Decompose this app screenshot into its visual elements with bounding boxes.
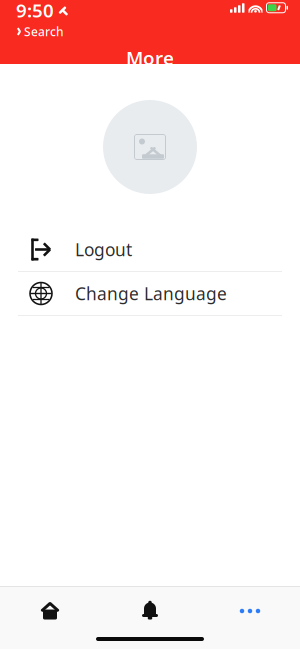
button[interactable]: Logout (0, 228, 300, 271)
button[interactable]: Notifications (100, 594, 200, 628)
staticText: Logout (75, 238, 132, 261)
staticText: Change Language (75, 282, 227, 305)
staticText: Search (24, 23, 64, 39)
button[interactable]: More (200, 594, 300, 628)
button[interactable]: Change Language (0, 272, 300, 315)
staticText: 9:50 (16, 0, 54, 22)
button[interactable]: Home (0, 594, 100, 628)
staticText: More (126, 45, 174, 70)
